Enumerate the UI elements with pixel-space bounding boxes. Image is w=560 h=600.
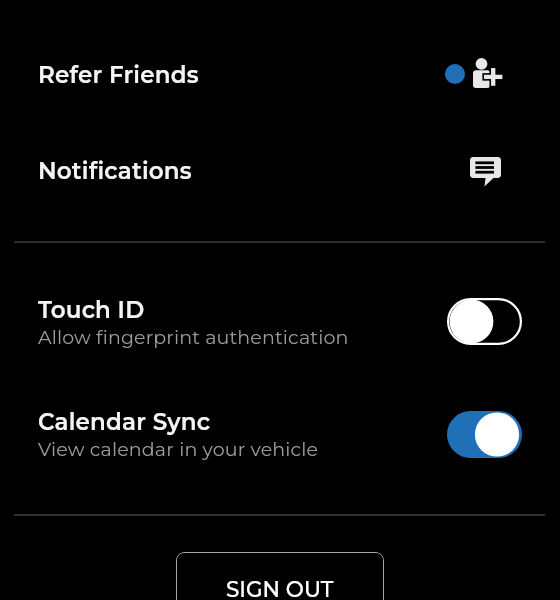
- staticText: View calendar in your vehicle: [38, 438, 319, 461]
- staticText: Calendar Sync: [38, 408, 211, 436]
- button[interactable]: Calendar Sync: [0, 400, 560, 472]
- staticText: Refer Friends: [38, 61, 199, 89]
- staticText: Notifications: [38, 157, 192, 185]
- staticText: Allow fingerprint authentication: [38, 326, 349, 349]
- button[interactable]: Toggle off: [447, 298, 522, 345]
- button[interactable]: Notifications: [0, 142, 560, 198]
- other: Unread badge: [445, 64, 465, 84]
- button[interactable]: Toggle on: [447, 411, 522, 458]
- staticText: SIGN OUT: [226, 576, 334, 600]
- button[interactable]: Open messages: [463, 150, 507, 194]
- button[interactable]: Invite a friend: [466, 44, 510, 88]
- staticText: Touch ID: [38, 296, 145, 324]
- button[interactable]: SIGN OUT: [176, 552, 384, 600]
- button[interactable]: Touch ID: [0, 288, 560, 360]
- button[interactable]: Refer Friends: [0, 46, 560, 102]
